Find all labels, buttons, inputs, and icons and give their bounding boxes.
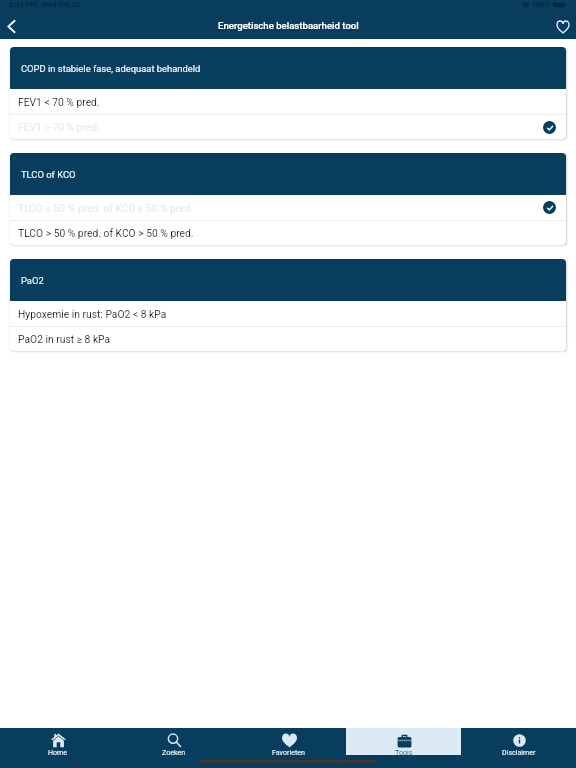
staticText: Home <box>48 748 68 755</box>
staticText: COPD in stabiele fase, adequaat behandel… <box>21 63 201 74</box>
button[interactable]: TLCO > 50 % pred. of KCO > 50 % pred. <box>10 221 566 245</box>
staticText: TLCO ≤ 50 % pred. of KCO ≤ 50 % pred. <box>18 202 194 214</box>
button[interactable]: Favorite <box>548 14 576 39</box>
button[interactable]: Home <box>0 728 116 755</box>
staticText: Favorieten <box>272 748 305 755</box>
staticText: TLCO of KCO <box>21 169 76 180</box>
staticText: Zoeken <box>162 748 186 755</box>
button[interactable]: TLCO ≤ 50 % pred. of KCO ≤ 50 % pred. <box>10 195 566 220</box>
staticText: Energetische belastbaarheid tool <box>218 20 359 31</box>
button[interactable]: FEV1 < 70 % pred. <box>10 89 566 114</box>
button[interactable]: PaO2 in rust ≥ 8 kPa <box>10 327 566 351</box>
staticText: Tools <box>395 748 413 755</box>
staticText: FEV1 ≥ 70 % pred. <box>18 121 100 133</box>
staticText: PaO2 <box>21 275 44 286</box>
button[interactable]: Favorieten <box>231 728 346 755</box>
button[interactable]: Tools <box>346 728 461 755</box>
button[interactable]: Disclaimer <box>461 728 576 755</box>
staticText: PaO2 in rust ≥ 8 kPa <box>18 333 111 345</box>
staticText: 2:33 PM <box>9 0 37 9</box>
staticText: Hypoxemie in rust: PaO2 < 8 kPa <box>18 308 167 320</box>
staticText: TLCO > 50 % pred. of KCO > 50 % pred. <box>18 227 194 239</box>
staticText: FEV1 < 70 % pred. <box>18 96 100 108</box>
staticText: 100% <box>532 0 551 9</box>
button[interactable]: FEV1 ≥ 70 % pred. <box>10 115 566 139</box>
button[interactable]: Zoeken <box>116 728 231 755</box>
staticText: Wed Oct 23 <box>42 0 81 9</box>
staticText: Disclaimer <box>502 748 536 755</box>
button[interactable]: Back <box>0 14 22 39</box>
button[interactable]: Hypoxemie in rust: PaO2 < 8 kPa <box>10 301 566 326</box>
